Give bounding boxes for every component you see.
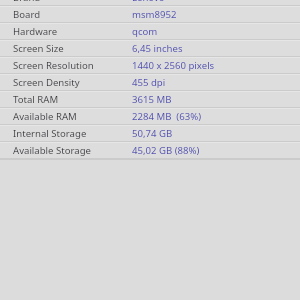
button[interactable]: Total RAM — [0, 91, 300, 108]
button[interactable]: Available RAM — [0, 108, 300, 125]
staticText: Lenovo — [132, 0, 165, 4]
button[interactable]: Board — [0, 6, 300, 23]
staticText: Board — [13, 8, 41, 21]
staticText: Brand — [13, 0, 41, 4]
staticText: Internal Storage — [13, 127, 87, 140]
staticText: Available Storage — [13, 144, 91, 157]
staticText: 50,74 GB — [132, 127, 173, 140]
button[interactable]: Screen Density — [0, 74, 300, 91]
staticText: 455 dpi — [132, 76, 166, 89]
staticText: 1440 x 2560 pixels — [132, 59, 215, 72]
button[interactable]: Hardware — [0, 23, 300, 40]
staticText: Available RAM — [13, 110, 77, 123]
staticText: Total RAM — [13, 93, 59, 106]
staticText: Screen Size — [13, 42, 64, 55]
staticText: 6,45 inches — [132, 42, 183, 55]
staticText: Screen Density — [13, 76, 80, 89]
staticText: Screen Resolution — [13, 59, 94, 72]
staticText: msm8952 — [132, 8, 177, 21]
button[interactable]: Brand — [0, 0, 300, 6]
staticText: 3615 MB — [132, 93, 172, 106]
staticText: 2284 MB (63%) — [132, 110, 202, 123]
button[interactable]: Available Storage — [0, 142, 300, 159]
staticText: qcom — [132, 25, 158, 38]
staticText: Hardware — [13, 25, 58, 38]
button[interactable]: Screen Size — [0, 40, 300, 57]
button[interactable]: Internal Storage — [0, 125, 300, 142]
button[interactable]: Screen Resolution — [0, 57, 300, 74]
staticText: 45,02 GB (88%) — [132, 144, 200, 157]
